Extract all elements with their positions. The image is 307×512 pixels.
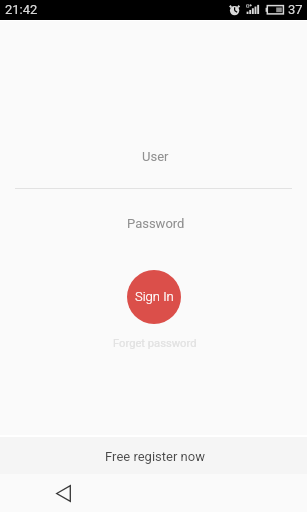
button[interactable]: Password: [0, 198, 307, 246]
button[interactable]: User: [0, 131, 307, 179]
staticText: Sign In: [135, 289, 174, 304]
staticText: 21:42: [5, 2, 38, 17]
staticText: Free register now: [105, 449, 205, 464]
staticText: 37: [288, 2, 303, 17]
button[interactable]: Back: [50, 480, 76, 506]
button[interactable]: Free register now: [0, 437, 307, 474]
staticText: Password: [127, 216, 185, 231]
button[interactable]: Sign In: [127, 270, 181, 324]
button[interactable]: Forget password: [113, 337, 197, 350]
staticText: User: [142, 149, 169, 164]
staticText: Forget password: [113, 337, 197, 350]
